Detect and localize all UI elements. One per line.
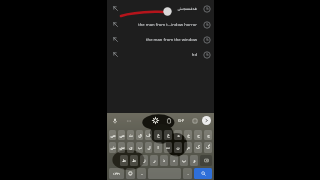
- other: Recent search: [200, 49, 214, 60]
- staticText: ه: [177, 133, 180, 138]
- button[interactable]: ف: [145, 130, 152, 140]
- staticText: ☺: [128, 171, 133, 176]
- staticText: خ: [187, 133, 190, 138]
- button[interactable]: ر: [150, 155, 158, 166]
- button[interactable]: گ: [204, 142, 212, 153]
- staticText: the man from t…indow horror: [123, 22, 197, 28]
- other: Insert suggestion: [107, 34, 123, 45]
- button[interactable]: ح: [194, 130, 202, 140]
- button[interactable]: ن: [174, 142, 182, 153]
- staticText: د: [173, 158, 175, 163]
- staticText: ع: [167, 133, 170, 138]
- button[interactable]: ل: [145, 142, 152, 153]
- button[interactable]: ب: [136, 142, 143, 153]
- button[interactable]: ج: [204, 130, 212, 140]
- staticText: هدفسنجش: [123, 6, 197, 11]
- button[interactable]: پ: [180, 155, 188, 166]
- staticText: م: [187, 145, 190, 150]
- staticText: ل: [147, 145, 151, 150]
- button[interactable]: ☺: [126, 168, 135, 179]
- button[interactable]: ش: [109, 142, 116, 153]
- other: Recent search: [200, 2, 214, 15]
- button[interactable]: Insert suggestion: [107, 19, 214, 30]
- button[interactable]: Expand toolbar: [202, 116, 211, 125]
- button[interactable]: ث: [127, 130, 134, 140]
- button[interactable]: ذ: [160, 155, 168, 166]
- other: Insert suggestion: [107, 49, 123, 60]
- button[interactable]: ص: [118, 130, 125, 140]
- button[interactable]: س: [118, 142, 125, 153]
- staticText: ش: [110, 145, 116, 150]
- staticText: hd: [123, 52, 197, 58]
- staticText: ث: [129, 133, 133, 138]
- button[interactable]: ی: [127, 142, 134, 153]
- staticText: ر: [153, 158, 156, 163]
- staticText: و: [193, 158, 196, 163]
- button[interactable]: د: [170, 155, 178, 166]
- staticText: ا: [157, 145, 159, 150]
- staticText: ح: [197, 133, 200, 138]
- other: Recent search: [200, 34, 214, 45]
- staticText: ز: [143, 158, 146, 163]
- staticText: پ: [182, 158, 186, 163]
- staticText: ذ: [163, 158, 165, 163]
- staticText: ک: [196, 145, 200, 150]
- button[interactable]: Clipboard: [164, 116, 173, 125]
- button[interactable]: Search: [194, 168, 212, 179]
- button[interactable]: Settings: [151, 116, 160, 125]
- staticText: ظ: [122, 158, 126, 163]
- staticText: ض: [110, 133, 116, 138]
- staticText: ف: [146, 133, 151, 138]
- staticText: س: [119, 145, 125, 150]
- staticText: ن: [176, 145, 180, 150]
- button[interactable]: غ: [154, 130, 162, 140]
- button[interactable]: ا: [154, 142, 162, 153]
- other: Insert suggestion: [107, 2, 123, 15]
- button[interactable]: ؟١٢٣: [109, 168, 124, 179]
- staticText: ی: [129, 145, 133, 150]
- button[interactable]: Insert suggestion: [107, 34, 214, 45]
- button[interactable]: ک: [194, 142, 202, 153]
- button[interactable]: ت: [164, 142, 172, 153]
- staticText: .: [187, 171, 189, 177]
- button[interactable]: More options: [124, 116, 133, 125]
- staticText: ط: [132, 158, 136, 163]
- staticText: ب: [138, 145, 142, 150]
- button[interactable]: Translate: [177, 116, 186, 125]
- button[interactable]: Insert suggestion: [107, 2, 214, 15]
- button[interactable]: Voice input: [110, 116, 119, 125]
- button[interactable]: و: [190, 155, 198, 166]
- button[interactable]: .: [183, 168, 192, 179]
- button[interactable]: ض: [109, 130, 116, 140]
- staticText: ،: [141, 171, 143, 176]
- staticText: غ: [157, 133, 160, 138]
- staticText: گ: [206, 145, 210, 150]
- other: Recent search: [200, 19, 214, 30]
- button[interactable]: Insert suggestion: [107, 49, 214, 60]
- staticText: ؟١٢٣: [113, 172, 120, 176]
- button[interactable]: خ: [184, 130, 192, 140]
- staticText: ت: [166, 145, 170, 150]
- button[interactable]: ق: [136, 130, 143, 140]
- staticText: ص: [119, 133, 125, 138]
- button[interactable]: ه: [174, 130, 182, 140]
- staticText: the man from the window: [123, 37, 197, 43]
- button[interactable]: Backspace: [200, 155, 212, 166]
- button[interactable]: ط: [130, 155, 138, 166]
- button[interactable]: ز: [140, 155, 148, 166]
- button[interactable]: Sticker: [190, 116, 199, 125]
- button[interactable]: ظ: [120, 155, 128, 166]
- button[interactable]: م: [184, 142, 192, 153]
- staticText: G·F: [178, 118, 185, 123]
- staticText: ق: [138, 133, 142, 138]
- button[interactable]: ع: [164, 130, 172, 140]
- button[interactable]: ،: [137, 168, 146, 179]
- other: Insert suggestion: [107, 19, 123, 30]
- staticText: ج: [207, 133, 210, 138]
